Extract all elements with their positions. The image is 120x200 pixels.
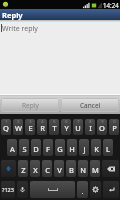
button[interactable]: T	[49, 119, 59, 135]
staticText: Write reply	[2, 24, 38, 34]
staticText: 3	[29, 119, 32, 124]
button[interactable]: S	[19, 139, 29, 156]
staticText: V	[57, 165, 62, 175]
staticText: X	[33, 165, 38, 175]
staticText: L	[106, 144, 110, 154]
button[interactable]: C	[42, 160, 52, 177]
staticText: ?123	[2, 186, 14, 193]
button[interactable]: A	[7, 139, 17, 156]
button[interactable]: R	[37, 119, 47, 135]
staticText: P	[112, 123, 117, 133]
staticText: S	[22, 144, 27, 154]
button[interactable]: L	[103, 139, 113, 156]
staticText: F	[46, 144, 50, 154]
button[interactable]: G	[55, 139, 65, 156]
staticText: H	[69, 144, 75, 154]
button[interactable]: M	[90, 160, 100, 177]
button[interactable]: Z	[18, 160, 28, 177]
staticText: A	[10, 144, 15, 154]
button[interactable]: K	[91, 139, 101, 156]
button[interactable]: Cancel	[61, 98, 119, 112]
staticText: 2	[17, 119, 20, 124]
button[interactable]: Backspace	[102, 160, 119, 177]
button[interactable]: V	[54, 160, 64, 177]
button[interactable]: U	[73, 119, 83, 135]
button[interactable]: F	[43, 139, 53, 156]
staticText: K	[94, 144, 99, 154]
staticText: 6	[65, 119, 68, 124]
staticText: 0	[113, 119, 116, 124]
staticText: O	[99, 123, 105, 133]
button[interactable]: E	[25, 119, 35, 135]
button[interactable]: Settings	[90, 181, 101, 198]
staticText: 1	[5, 119, 8, 124]
button[interactable]: Q	[1, 119, 11, 135]
button[interactable]: Y	[61, 119, 71, 135]
staticText: 9	[101, 119, 104, 124]
button[interactable]: Enter	[103, 181, 119, 198]
staticText: J	[83, 144, 86, 154]
button[interactable]: ?123	[1, 181, 15, 198]
button[interactable]: H	[67, 139, 77, 156]
staticText: C	[45, 165, 50, 175]
staticText: N	[80, 165, 86, 175]
staticText: Reply	[22, 101, 39, 110]
button[interactable]: Space	[30, 181, 75, 198]
button[interactable]: Reply	[1, 98, 59, 112]
button[interactable]: O	[97, 119, 107, 135]
staticText: 7	[77, 119, 80, 124]
button[interactable]: Voice input	[17, 181, 28, 198]
staticText: .	[81, 186, 84, 196]
staticText: 4	[41, 119, 44, 124]
button[interactable]: D	[31, 139, 41, 156]
button[interactable]: I	[85, 119, 95, 135]
staticText: Q	[3, 123, 9, 133]
staticText: Z	[21, 165, 26, 175]
staticText: U	[75, 123, 81, 133]
button[interactable]: X	[30, 160, 40, 177]
staticText: D	[33, 144, 39, 154]
button[interactable]: P	[109, 119, 119, 135]
button[interactable]: N	[78, 160, 88, 177]
staticText: 8	[89, 119, 92, 124]
button[interactable]: Shift	[1, 160, 16, 177]
staticText: Cancel	[80, 101, 101, 110]
staticText: E	[28, 123, 33, 133]
staticText: G	[57, 144, 63, 154]
staticText: Reply	[2, 10, 23, 20]
staticText: 5	[53, 119, 56, 124]
button[interactable]: .	[77, 181, 88, 198]
button[interactable]: B	[66, 160, 76, 177]
button[interactable]: W	[13, 119, 23, 135]
staticText: I	[89, 123, 92, 133]
staticText: B	[69, 165, 74, 175]
staticText: R	[40, 123, 45, 133]
staticText: W	[15, 123, 22, 133]
staticText: T	[52, 123, 57, 133]
staticText: Y	[64, 123, 69, 133]
button[interactable]: J	[79, 139, 89, 156]
staticText: 14:24	[103, 1, 119, 9]
staticText: M	[92, 165, 99, 175]
